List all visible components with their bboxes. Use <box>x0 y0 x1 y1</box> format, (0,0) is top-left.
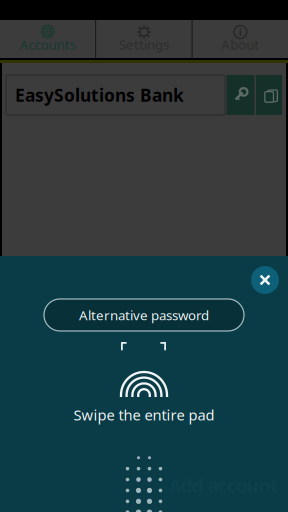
staticText: Alternative password <box>79 306 209 324</box>
button[interactable]: Settings <box>96 20 192 58</box>
staticText: Settings <box>119 35 169 53</box>
button[interactable]: Alternative password <box>44 299 244 331</box>
button[interactable]: Close <box>247 262 283 298</box>
button[interactable]: Copy password <box>256 75 282 115</box>
button[interactable]: EasySolutions Bank <box>6 75 225 115</box>
button[interactable]: Accounts <box>0 20 95 58</box>
staticText: About <box>221 35 259 53</box>
staticText: Swipe the entire pad <box>73 405 214 424</box>
button[interactable]: About <box>193 20 288 58</box>
staticText: EasySolutions Bank <box>15 83 184 106</box>
staticText: Accounts <box>20 35 76 53</box>
button[interactable]: Show password <box>226 75 254 115</box>
